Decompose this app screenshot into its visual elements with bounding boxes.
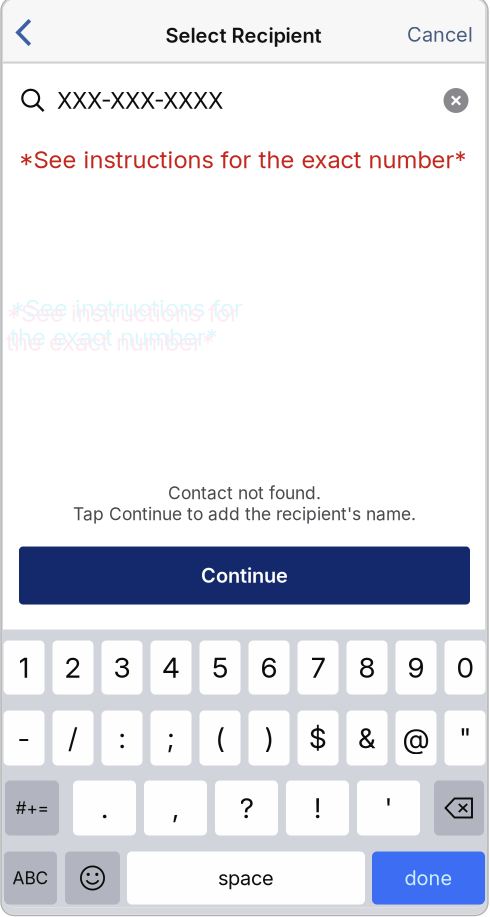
- button[interactable]: .: [73, 780, 136, 835]
- staticText: !: [314, 791, 321, 825]
- staticText: $: [309, 721, 327, 755]
- staticText: space: [218, 866, 274, 890]
- staticText: *See instructions for: [10, 293, 243, 322]
- button[interactable]: 0: [444, 640, 485, 694]
- staticText: 7: [310, 651, 325, 684]
- staticText: 3: [113, 651, 130, 684]
- staticText: the exact number*: [10, 322, 218, 351]
- staticText: ": [459, 721, 471, 755]
- button[interactable]: ;: [150, 710, 191, 765]
- button[interactable]: @: [395, 710, 436, 765]
- button[interactable]: Continue: [19, 546, 470, 604]
- button[interactable]: 6: [248, 640, 289, 694]
- button[interactable]: 4: [150, 640, 191, 694]
- button[interactable]: ): [248, 710, 289, 765]
- button[interactable]: 7: [297, 640, 338, 694]
- staticText: the exact number*: [6, 327, 214, 356]
- staticText: #+=: [15, 797, 48, 818]
- button[interactable]: Cancel: [393, 6, 485, 56]
- staticText: ABC: [12, 867, 48, 888]
- staticText: done: [404, 866, 452, 890]
- button[interactable]: -: [3, 710, 44, 765]
- staticText: Tap Continue to add the recipient's name…: [73, 503, 416, 524]
- staticText: 4: [162, 651, 180, 684]
- button[interactable]: ?: [215, 780, 278, 835]
- button[interactable]: 9: [395, 640, 436, 694]
- staticText: Select Recipient: [165, 23, 321, 48]
- staticText: 9: [407, 651, 424, 684]
- staticText: Continue: [201, 563, 288, 588]
- button[interactable]: Emoji: [65, 851, 120, 904]
- staticText: &: [358, 721, 376, 755]
- staticText: (: [215, 721, 224, 755]
- button[interactable]: (: [199, 710, 240, 765]
- staticText: *See instructions for: [6, 298, 239, 327]
- button[interactable]: 3: [101, 640, 142, 694]
- staticText: .: [101, 791, 108, 825]
- button[interactable]: ABC: [4, 851, 57, 904]
- button[interactable]: 8: [346, 640, 387, 694]
- button[interactable]: space: [127, 851, 365, 904]
- staticText: 5: [212, 651, 228, 684]
- button[interactable]: ": [444, 710, 485, 765]
- button[interactable]: 2: [52, 640, 93, 694]
- staticText: :: [118, 721, 125, 755]
- staticText: 8: [358, 651, 375, 684]
- button[interactable]: Back: [2, 6, 44, 56]
- button[interactable]: ': [357, 780, 420, 835]
- staticText: ': [384, 791, 392, 825]
- button[interactable]: 1: [3, 640, 44, 694]
- button[interactable]: $: [297, 710, 338, 765]
- staticText: 2: [64, 651, 81, 684]
- staticText: 0: [456, 651, 473, 684]
- staticText: ): [264, 721, 273, 755]
- staticText: -: [17, 721, 30, 755]
- button[interactable]: :: [101, 710, 142, 765]
- staticText: 1: [18, 651, 29, 684]
- staticText: ;: [167, 721, 175, 755]
- button[interactable]: ,: [144, 780, 207, 835]
- staticText: XXX-XXX-XXXX: [57, 87, 223, 114]
- staticText: /: [68, 721, 78, 755]
- button[interactable]: !: [286, 780, 349, 835]
- staticText: 6: [260, 651, 277, 684]
- staticText: Cancel: [407, 22, 473, 47]
- button[interactable]: Clear text: [434, 78, 478, 122]
- staticText: ?: [239, 791, 253, 825]
- button[interactable]: /: [52, 710, 93, 765]
- staticText: @: [402, 721, 429, 755]
- staticText: ,: [172, 791, 179, 825]
- button[interactable]: done: [372, 851, 485, 904]
- button[interactable]: 5: [199, 640, 240, 694]
- staticText: *See instructions for the exact number*: [18, 145, 466, 174]
- button[interactable]: #+=: [5, 780, 59, 835]
- button[interactable]: &: [346, 710, 387, 765]
- button[interactable]: Delete: [434, 780, 484, 835]
- staticText: Contact not found.: [168, 482, 321, 503]
